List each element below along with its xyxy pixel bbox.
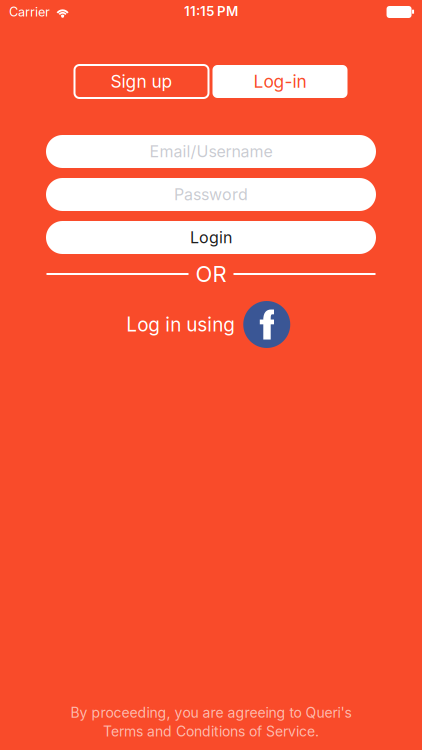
staticText: Log-in <box>253 71 306 92</box>
button[interactable]: Log-in <box>212 65 347 98</box>
staticText: Password <box>174 185 248 204</box>
staticText: Sign up <box>110 71 172 92</box>
staticText: By proceeding, you are agreeing to Queri… <box>70 704 351 721</box>
staticText: Terms and Conditions of Service. <box>103 723 319 740</box>
button[interactable]: Email/Username <box>46 135 376 168</box>
staticText: OR <box>195 261 226 287</box>
button[interactable]: Log in with Facebook <box>243 301 290 348</box>
button[interactable]: Login <box>46 221 376 254</box>
button[interactable]: Sign up <box>74 65 208 98</box>
button[interactable]: By proceeding, you are agreeing to Queri… <box>70 704 351 740</box>
button[interactable]: Password <box>46 178 376 211</box>
staticText: 11:15 PM <box>184 3 238 19</box>
staticText: Log in using <box>126 313 235 336</box>
staticText: Email/Username <box>149 142 272 161</box>
staticText: Login <box>190 228 232 247</box>
staticText: Carrier <box>9 4 50 20</box>
